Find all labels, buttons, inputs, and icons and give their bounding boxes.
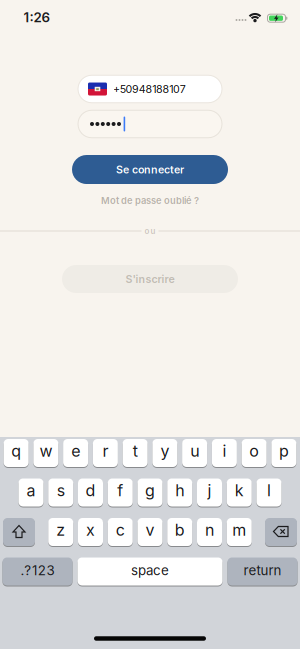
staticText: S'inscrire (125, 273, 174, 285)
staticText: t (133, 442, 138, 460)
button[interactable]: p (271, 438, 296, 467)
staticText: q (11, 442, 21, 460)
staticText: l (267, 481, 271, 500)
staticText: e (71, 442, 80, 460)
staticText: Se connecter (116, 163, 184, 176)
staticText: k (235, 481, 244, 500)
button[interactable]: s (48, 478, 73, 507)
staticText: ou (145, 226, 155, 236)
staticText: z (56, 521, 65, 539)
button[interactable]: Mot de passe oublié ? (101, 195, 199, 206)
staticText: d (85, 481, 95, 500)
button[interactable]: a (18, 478, 43, 507)
button[interactable]: d (78, 478, 103, 507)
button[interactable]: g (137, 478, 162, 507)
staticText: p (279, 442, 289, 460)
button[interactable]: l (256, 478, 281, 507)
staticText: h (175, 481, 184, 500)
button[interactable]: o (242, 438, 267, 467)
button[interactable]: w (33, 438, 58, 467)
button[interactable]: h (167, 478, 192, 507)
staticText: m (232, 521, 246, 539)
staticText: j (207, 481, 211, 500)
staticText: x (86, 521, 95, 539)
staticText: space (131, 563, 169, 578)
button[interactable]: i (212, 438, 237, 467)
button[interactable]: b (167, 517, 192, 546)
staticText: i (222, 442, 226, 460)
staticText: v (145, 521, 154, 539)
button[interactable]: u (182, 438, 207, 467)
staticText: +50948188107 (113, 83, 186, 95)
button[interactable]: return (227, 557, 297, 586)
button[interactable]: z (48, 517, 73, 546)
button[interactable]: S'inscrire (62, 265, 238, 293)
staticText: b (175, 521, 185, 539)
staticText: 1:26 (23, 10, 50, 25)
staticText: a (26, 481, 35, 500)
staticText: u (190, 442, 199, 460)
button[interactable]: m (227, 517, 252, 546)
staticText: y (160, 442, 169, 460)
button[interactable]: j (197, 478, 222, 507)
button[interactable]: e (63, 438, 88, 467)
button[interactable]: q (4, 438, 29, 467)
staticText: Mot de passe oublié ? (101, 195, 199, 206)
button[interactable]: Se connecter (72, 155, 228, 184)
staticText: c (116, 521, 125, 539)
staticText: f (117, 481, 123, 500)
staticText: n (205, 521, 214, 539)
button[interactable]: Delete (265, 517, 297, 546)
staticText: w (39, 442, 52, 460)
button[interactable]: space (77, 557, 222, 586)
button[interactable]: k (227, 478, 252, 507)
staticText: return (243, 563, 281, 578)
button[interactable]: Shift (3, 517, 35, 546)
staticText: o (249, 442, 259, 460)
button[interactable]: .?123 (2, 557, 72, 586)
button[interactable]: +50948188107 (78, 75, 222, 103)
button[interactable]: r (93, 438, 118, 467)
button[interactable]: c (108, 517, 133, 546)
button[interactable]: n (197, 517, 222, 546)
staticText: r (102, 442, 108, 460)
button[interactable]: Mot de passe (78, 110, 222, 138)
staticText: s (57, 481, 65, 500)
button[interactable]: y (152, 438, 177, 467)
button[interactable]: f (108, 478, 133, 507)
staticText: .?123 (20, 563, 55, 578)
button[interactable]: v (137, 517, 162, 546)
staticText: g (145, 481, 155, 500)
button[interactable]: t (123, 438, 148, 467)
button[interactable]: x (78, 517, 103, 546)
